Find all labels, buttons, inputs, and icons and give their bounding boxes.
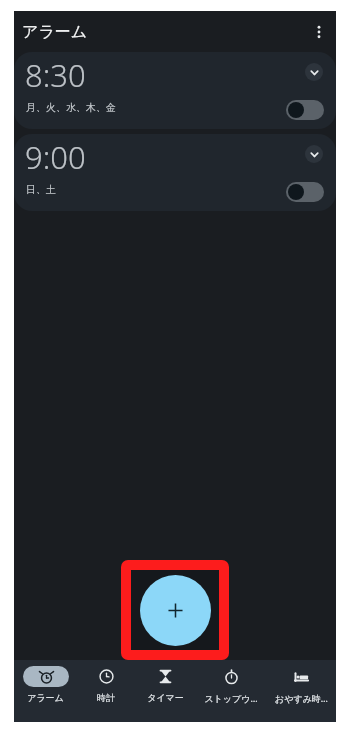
staticText: 9:00 xyxy=(25,136,86,178)
staticText: 時計 xyxy=(97,692,115,703)
button[interactable]: Add alarm xyxy=(140,575,211,646)
button[interactable]: More options xyxy=(302,15,336,49)
button[interactable]: おやすみ時… xyxy=(266,660,336,722)
button[interactable]: アラーム xyxy=(14,660,77,722)
button[interactable]: Toggle alarm xyxy=(286,100,324,120)
staticText: タイマー xyxy=(147,692,184,703)
button[interactable]: 9:00 xyxy=(14,134,336,211)
button[interactable]: Expand alarm xyxy=(305,145,323,163)
button[interactable]: 時計 xyxy=(77,660,134,722)
staticText: 8:30 xyxy=(25,54,86,96)
staticText: アラーム xyxy=(22,22,88,42)
button[interactable]: Toggle alarm xyxy=(286,182,324,202)
staticText: ストップウ… xyxy=(204,692,258,704)
staticText: アラーム xyxy=(27,692,64,703)
button[interactable]: ストップウ… xyxy=(196,660,266,722)
button[interactable]: 8:30 xyxy=(14,52,336,129)
button[interactable]: タイマー xyxy=(134,660,196,722)
staticText: 月、火、水、木、金 xyxy=(26,101,116,114)
button[interactable]: Expand alarm xyxy=(305,63,323,81)
staticText: 日、土 xyxy=(26,183,56,196)
staticText: おやすみ時… xyxy=(275,692,328,704)
